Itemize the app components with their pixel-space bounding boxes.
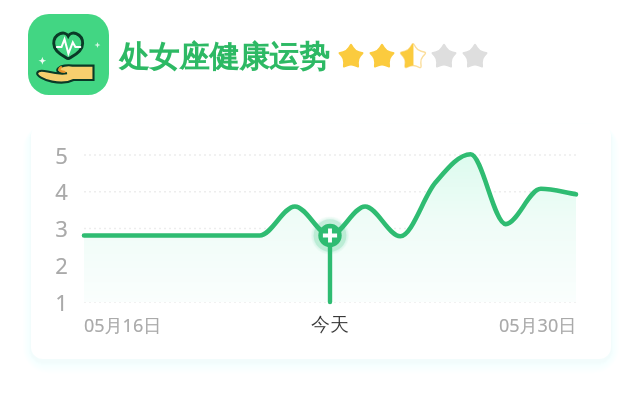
staticText: 2	[55, 250, 68, 274]
button[interactable]: 评分 4 星	[429, 42, 460, 70]
staticText: 今天	[311, 313, 349, 337]
button[interactable]: 评分 3 星	[398, 42, 429, 70]
staticText: 4	[55, 176, 68, 200]
staticText: 处女座健康运势	[119, 38, 329, 76]
staticText: 1	[55, 287, 68, 311]
button[interactable]: 评分 5 星	[460, 42, 491, 70]
button[interactable]: 评分 2 星	[367, 42, 398, 70]
button[interactable]: 健康运势图标	[28, 14, 109, 95]
staticText: 05月30日	[499, 313, 577, 338]
staticText: 05月16日	[84, 313, 162, 338]
button[interactable]: 评分 1 星	[336, 42, 367, 70]
staticText: 3	[55, 213, 68, 237]
staticText: 5	[55, 140, 68, 164]
